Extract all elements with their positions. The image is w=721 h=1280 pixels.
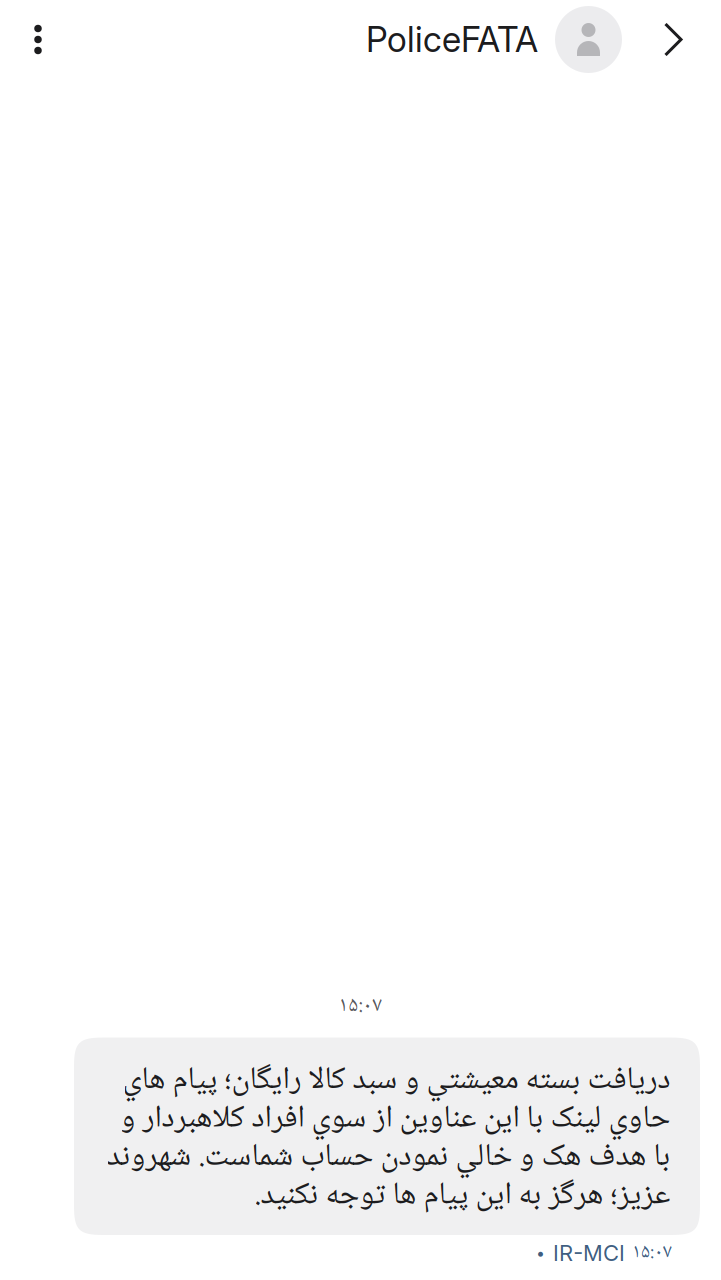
staticText: ۱۵:۰۷ <box>632 1236 672 1270</box>
button[interactable]: More options <box>0 0 76 79</box>
staticText: با هدف هک و خالي نمودن حساب شماست. شهرون… <box>106 1131 670 1185</box>
staticText: حاوي لينک با اين عناوين از سوي افراد كلا… <box>120 1093 670 1146</box>
staticText: عزيز؛ هرگز به اين پيام ها توجه نكنيد. <box>254 1170 670 1223</box>
button[interactable]: Contact details <box>622 0 721 79</box>
staticText: PoliceFATA <box>366 18 538 60</box>
staticText: • <box>536 1243 545 1263</box>
staticText: ۱۵:۰۷ <box>338 988 382 1024</box>
staticText: IR-MCI <box>553 1240 625 1266</box>
staticText: دريافت بسته معيشتي و سبد كالا رايگان؛ پي… <box>122 1055 670 1108</box>
button[interactable]: PoliceFATA <box>366 0 622 79</box>
